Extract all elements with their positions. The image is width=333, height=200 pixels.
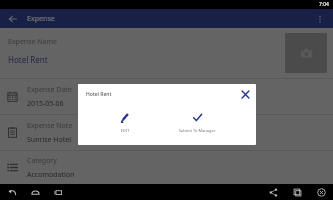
- staticText: Hotel Rent: [8, 54, 48, 65]
- staticText: Hotel Rent: [86, 91, 112, 98]
- button[interactable]: Notifications: [315, 186, 328, 199]
- button[interactable]: Expense Date: [6, 79, 333, 114]
- button[interactable]: Screenshot: [291, 186, 304, 199]
- staticText: Expense: [27, 14, 55, 24]
- staticText: Expense Name: [8, 37, 58, 47]
- button[interactable]: More options: [313, 12, 327, 26]
- staticText: Submit To Manager: [160, 128, 234, 133]
- staticText: EDIT: [96, 128, 154, 133]
- button[interactable]: Share: [267, 186, 280, 199]
- button[interactable]: Back: [6, 186, 19, 199]
- staticText: Category: [27, 156, 57, 166]
- staticText: 2015-05-06: [27, 99, 64, 109]
- button[interactable]: Expense Note: [6, 115, 333, 150]
- staticText: Expense Note: [27, 121, 73, 131]
- staticText: Sunrise Hotel: [27, 135, 72, 145]
- button[interactable]: EDIT: [96, 111, 154, 133]
- button[interactable]: Back: [6, 12, 20, 26]
- button[interactable]: Close: [238, 87, 252, 101]
- staticText: Expense Date: [27, 85, 72, 95]
- staticText: 7:04: [319, 1, 329, 8]
- button[interactable]: Home: [29, 186, 42, 199]
- button[interactable]: Expense Name: [8, 37, 285, 78]
- staticText: Accomodation: [27, 170, 75, 180]
- button[interactable]: Category: [6, 151, 333, 184]
- button[interactable]: Submit To Manager: [160, 111, 234, 133]
- button[interactable]: Recents: [52, 186, 65, 199]
